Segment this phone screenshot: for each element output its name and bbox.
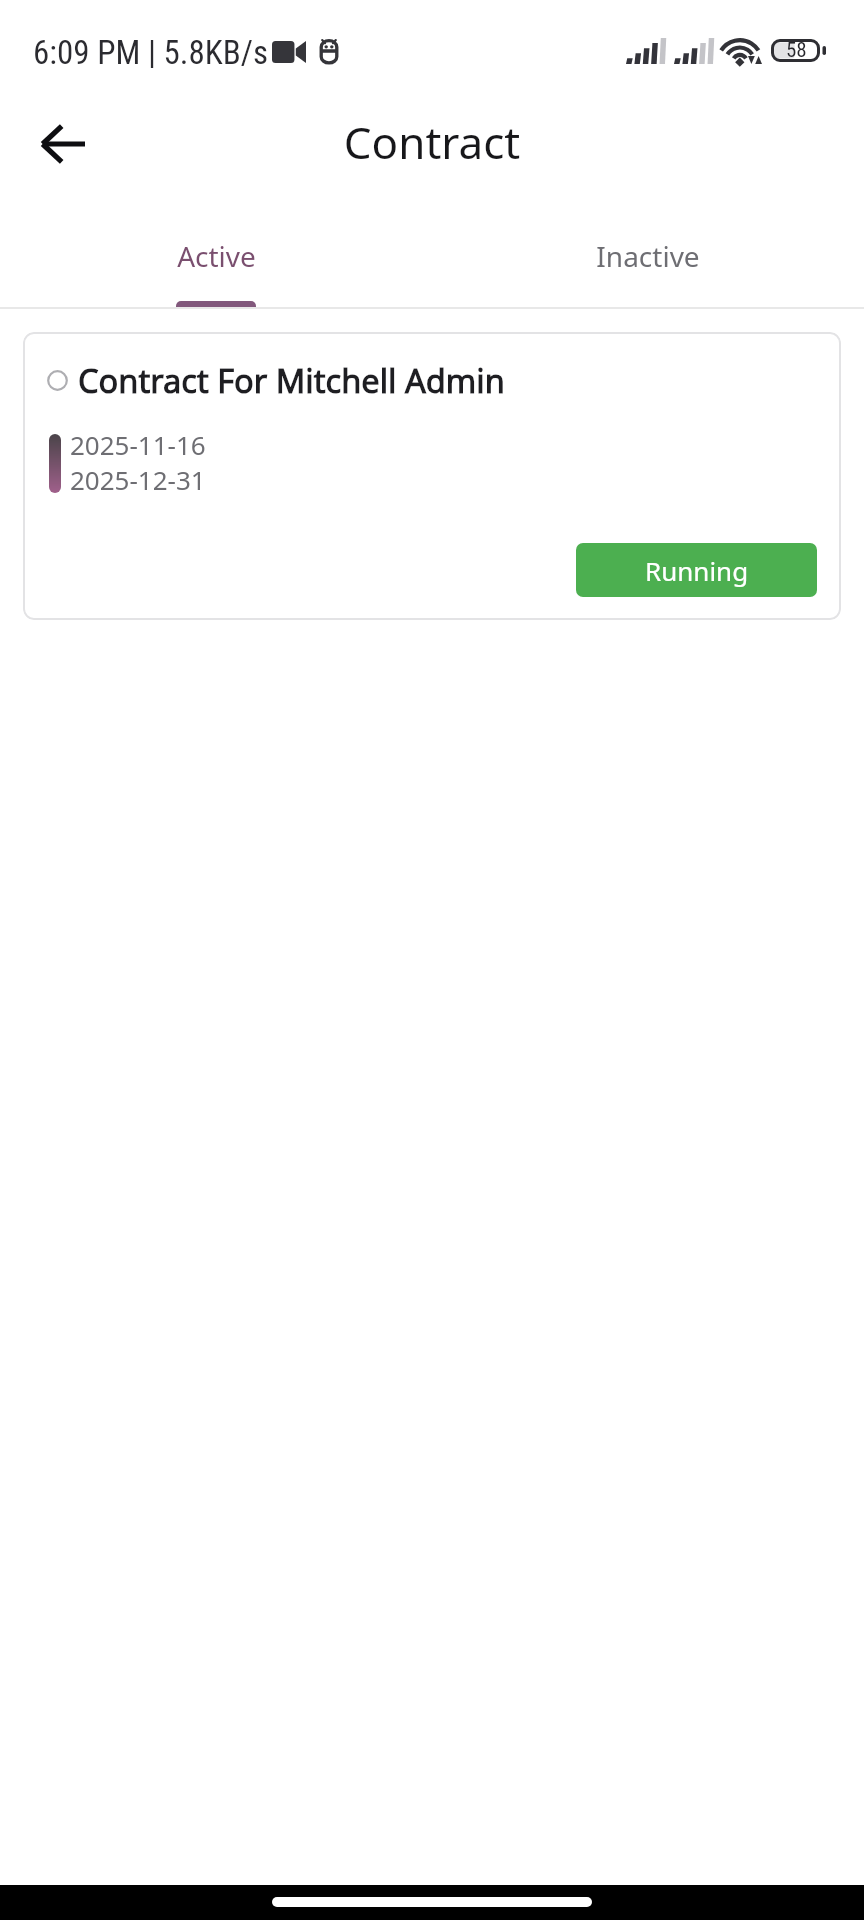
staticText: Contract For Mitchell Admin — [78, 358, 505, 402]
button[interactable]: Running — [576, 543, 817, 597]
staticText: Inactive — [596, 237, 700, 275]
staticText: 2025-12-31 — [70, 462, 206, 497]
button[interactable]: Back — [28, 109, 98, 179]
staticText: 58 — [786, 38, 807, 61]
button[interactable]: Inactive — [432, 200, 864, 309]
staticText: Active — [177, 237, 256, 275]
button[interactable]: Contract For Mitchell Admin — [23, 332, 841, 620]
staticText: Contract — [0, 112, 864, 172]
staticText: 6:09 PM | 5.8KB/s — [33, 33, 269, 72]
button[interactable]: Active — [0, 200, 432, 309]
staticText: Running — [645, 553, 749, 588]
staticText: 2025-11-16 — [70, 427, 206, 462]
